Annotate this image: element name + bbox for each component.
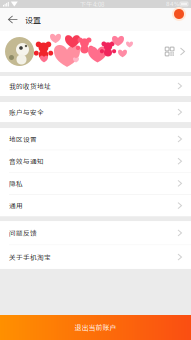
staticText: 下午 4:08 <box>80 0 104 8</box>
staticText: 账户与安全 <box>9 107 44 117</box>
staticText: 音效与通知 <box>9 156 44 166</box>
staticText: 通用 <box>9 201 23 210</box>
button[interactable]: 关于手机淘宝 <box>0 245 191 269</box>
button[interactable]: 我的收货地址 <box>0 76 191 96</box>
button[interactable] <box>0 31 191 72</box>
button[interactable]: 隐私 <box>0 173 191 194</box>
staticText: 84% <box>166 1 179 7</box>
button[interactable]: 音效与通知 <box>0 150 191 172</box>
staticText: 设置 <box>25 14 41 25</box>
button[interactable]: Back <box>0 8 25 31</box>
button[interactable]: 退出当前账户 <box>0 315 191 340</box>
staticText: 问题反馈 <box>9 228 37 238</box>
staticText: 地区设置 <box>9 134 37 144</box>
staticText: 隐私 <box>9 179 23 188</box>
staticText: 关于手机淘宝 <box>9 252 51 262</box>
button[interactable]: 账户与安全 <box>0 102 191 122</box>
button[interactable]: 地区设置 <box>0 128 191 150</box>
staticText: 我的收货地址 <box>9 81 51 91</box>
button[interactable]: 问题反馈 <box>0 221 191 245</box>
staticText: 退出当前账户 <box>74 322 116 332</box>
button[interactable]: 通用 <box>0 195 191 216</box>
